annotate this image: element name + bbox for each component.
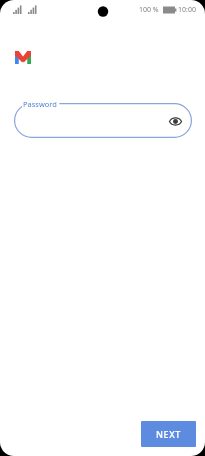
staticText: 100 % <box>139 5 159 15</box>
staticText: 10:00 <box>178 5 196 15</box>
staticText: NEXT <box>156 428 181 440</box>
button[interactable]: NEXT <box>141 421 196 447</box>
staticText: Password <box>23 99 57 109</box>
button[interactable]: Show password <box>165 111 185 131</box>
button[interactable]: Password <box>14 103 192 138</box>
